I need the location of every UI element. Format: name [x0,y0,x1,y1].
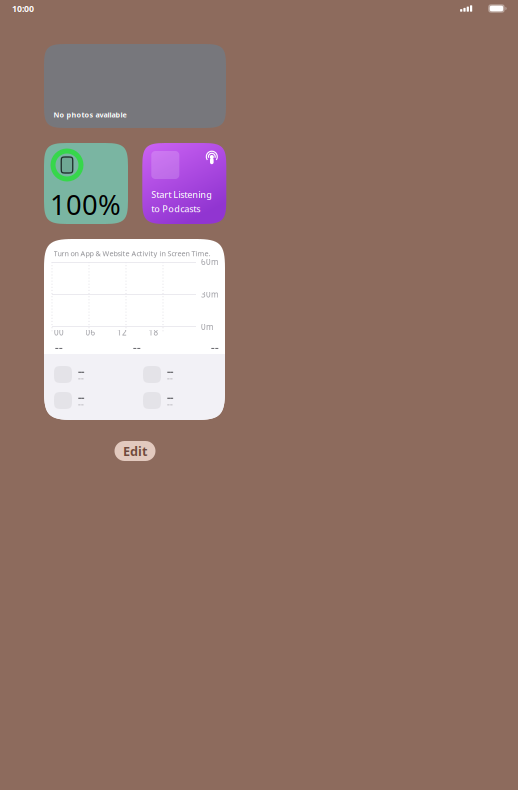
staticText: No photos available [53,110,126,119]
staticText: 06 [85,327,95,338]
staticText: 18 [148,327,158,338]
staticText: -- [78,372,84,384]
button[interactable]: No photos available [44,44,226,128]
staticText: -- [167,398,173,410]
staticText: -- [78,398,84,410]
button[interactable]: Edit [114,441,155,461]
button[interactable]: 100% [44,143,128,224]
button[interactable]: -- [44,239,225,420]
staticText: 12 [117,327,127,338]
staticText: Edit [123,442,147,460]
staticText: Start Listening [151,188,212,201]
staticText: 60m [201,257,218,267]
staticText: -- [167,372,173,384]
staticText: -- [78,389,84,404]
staticText: 10:00 [12,2,34,14]
staticText: -- [78,363,84,378]
staticText: 30m [201,289,218,300]
staticText: 100% [50,186,121,223]
staticText: -- [211,339,219,354]
staticText: Turn on App & Website Activity in Screen… [53,248,210,258]
staticText: to Podcasts [151,203,200,215]
staticText: 0m [201,322,213,332]
staticText: -- [167,389,173,404]
staticText: -- [133,339,141,354]
button[interactable]: Start Listening [142,143,226,224]
staticText: 00 [54,327,64,338]
staticText: -- [55,339,63,354]
staticText: -- [167,363,173,378]
